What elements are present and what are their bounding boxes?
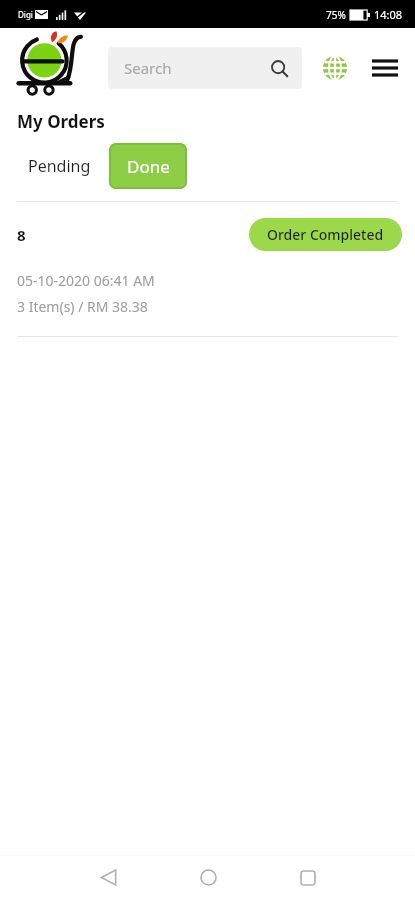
staticText: 05-10-2020 06:41 AM [17,271,155,290]
button[interactable]: Pending [14,143,105,189]
button[interactable]: Menu [367,50,403,86]
button[interactable]: Recent apps [258,855,358,900]
staticText: Done [127,155,170,178]
staticText: Search [124,58,172,78]
staticText: 3 Item(s) / RM 38.38 [17,297,148,316]
button[interactable]: 8 [0,202,415,336]
staticText: 75% [326,8,346,22]
button[interactable]: Search [108,47,302,89]
button[interactable]: Home [158,855,258,900]
staticText: 8 [17,225,26,245]
button[interactable]: Back [58,855,158,900]
staticText: 14:08 [374,7,403,22]
button[interactable]: Done [109,143,187,189]
button[interactable]: Home logo [14,30,90,106]
staticText: Order Completed [267,225,384,244]
button[interactable]: Language [318,51,352,85]
staticText: My Orders [17,110,105,133]
staticText: Digi [18,9,33,20]
staticText: Pending [28,155,91,177]
